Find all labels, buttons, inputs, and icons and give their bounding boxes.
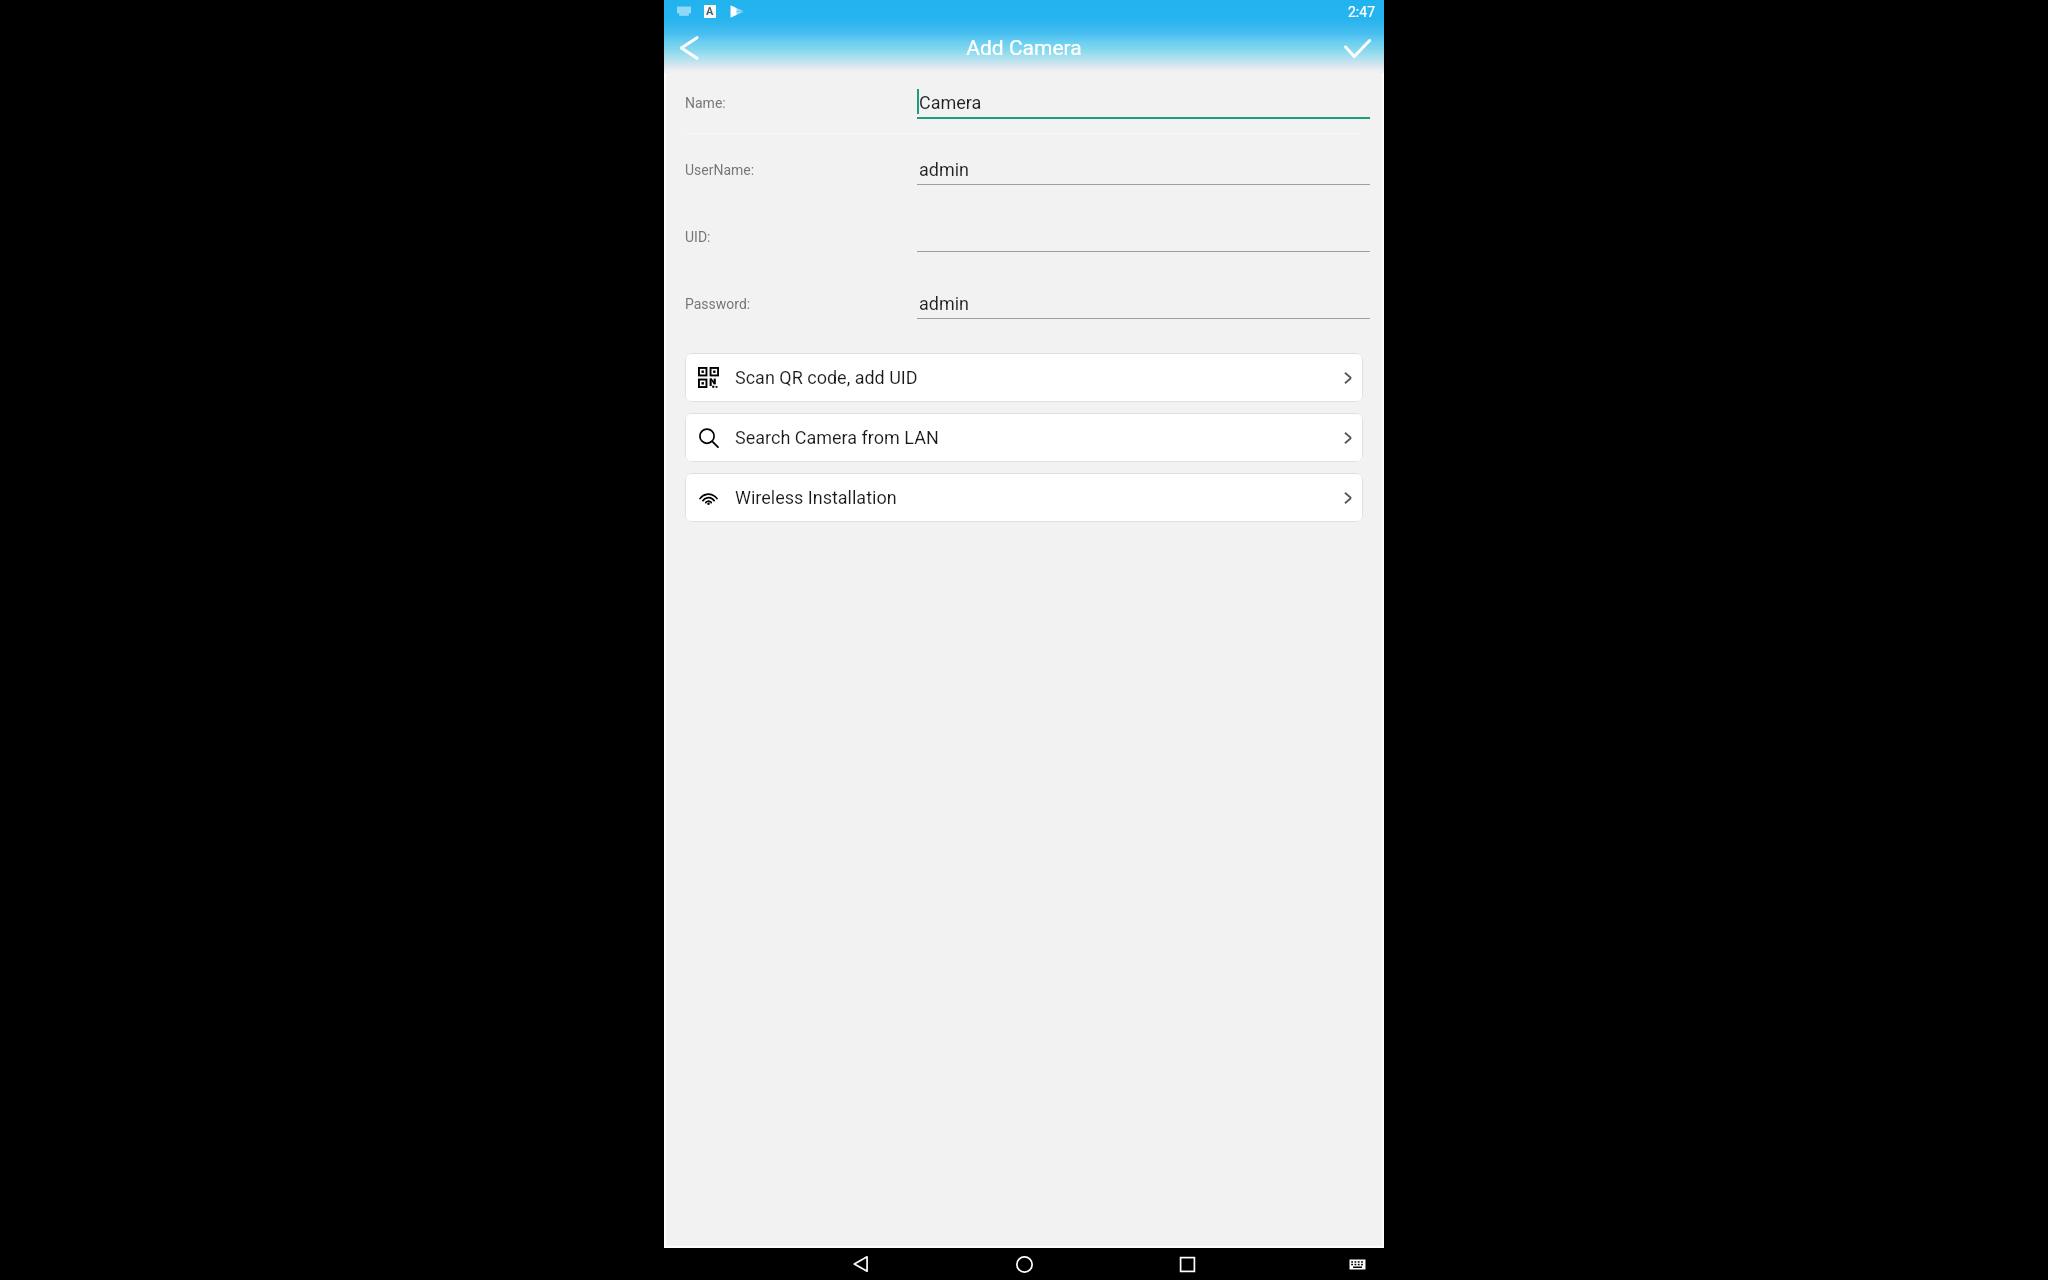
button[interactable]: Wireless Installation	[685, 473, 1363, 522]
staticText: Password:	[685, 296, 751, 312]
staticText: UID:	[685, 229, 711, 245]
button[interactable]: Keyboard	[1340, 1248, 1374, 1280]
staticText: Search Camera from LAN	[735, 427, 939, 448]
staticText: Name:	[685, 95, 726, 111]
staticText: Scan QR code, add UID	[735, 367, 918, 388]
button[interactable]: Name:	[917, 87, 1370, 119]
button[interactable]: Back	[841, 1248, 881, 1280]
button[interactable]: UID:	[917, 221, 1370, 253]
button[interactable]: Recent apps	[1167, 1248, 1207, 1280]
staticText: admin	[919, 293, 970, 314]
button[interactable]: Home	[1004, 1248, 1044, 1280]
button[interactable]: Scan QR code, add UID	[685, 353, 1363, 402]
staticText: Camera	[919, 92, 982, 113]
button[interactable]: Password:	[917, 288, 1370, 320]
button[interactable]: UserName:	[917, 154, 1370, 186]
staticText: A	[706, 5, 714, 18]
staticText: Add Camera	[966, 36, 1082, 61]
button[interactable]: Back	[668, 27, 710, 69]
staticText: UserName:	[685, 162, 755, 178]
staticText: Wireless Installation	[735, 487, 897, 508]
staticText: 2:47	[1348, 4, 1375, 20]
button[interactable]: Confirm	[1336, 27, 1378, 69]
button[interactable]: Search Camera from LAN	[685, 413, 1363, 462]
staticText: admin	[919, 159, 970, 180]
